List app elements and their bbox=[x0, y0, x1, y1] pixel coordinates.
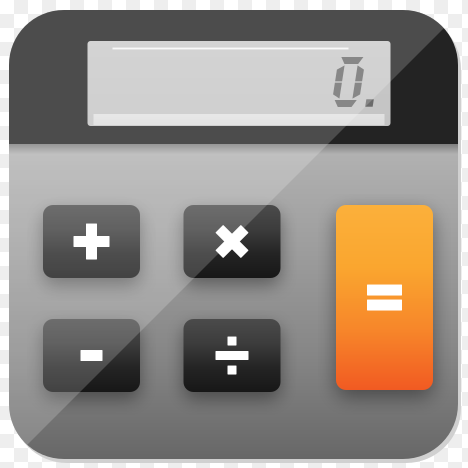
button[interactable]: Equals bbox=[336, 205, 433, 390]
button[interactable]: Divide bbox=[183, 319, 280, 392]
button[interactable]: Add bbox=[43, 205, 140, 278]
button[interactable]: Multiply bbox=[183, 205, 280, 278]
button[interactable]: Subtract bbox=[43, 319, 140, 392]
